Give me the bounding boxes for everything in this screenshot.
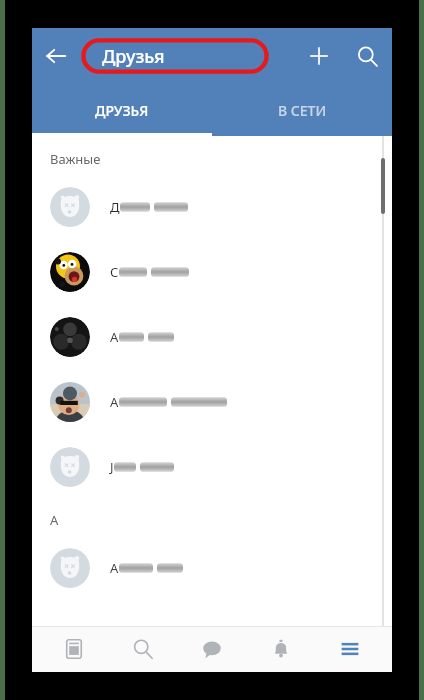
staticText: Важные	[50, 150, 101, 168]
staticText: С	[110, 263, 119, 281]
staticText: А	[110, 393, 119, 411]
button[interactable]: ДРУЗЬЯ	[32, 84, 212, 136]
staticText: Друзья	[102, 44, 165, 69]
button[interactable]: Menu	[323, 626, 377, 672]
button[interactable]: Messages	[185, 626, 239, 672]
staticText: J	[110, 458, 114, 476]
staticText: В СЕТИ	[278, 101, 327, 120]
button[interactable]: Search	[342, 31, 392, 81]
button[interactable]: Add friend	[296, 33, 342, 79]
staticText: ДРУЗЬЯ	[95, 101, 149, 120]
button[interactable]: С	[32, 239, 392, 304]
button[interactable]: Newsfeed	[47, 626, 101, 672]
button[interactable]: Back	[32, 32, 80, 80]
button[interactable]: Д	[32, 174, 392, 239]
button[interactable]: J	[32, 434, 392, 499]
button[interactable]: Notifications	[254, 626, 308, 672]
button[interactable]: A	[32, 535, 392, 600]
staticText: Д	[110, 198, 120, 216]
staticText: А	[110, 328, 119, 346]
button[interactable]: А	[32, 304, 392, 369]
staticText: A	[110, 559, 119, 577]
button[interactable]: Search	[116, 626, 170, 672]
staticText: A	[50, 511, 59, 529]
button[interactable]: В СЕТИ	[212, 84, 392, 136]
button[interactable]: А	[32, 369, 392, 434]
